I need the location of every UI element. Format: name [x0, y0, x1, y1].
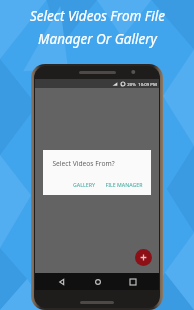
staticText: FILE MANAGER: [105, 181, 143, 188]
button[interactable]: GALLERY: [70, 179, 98, 190]
button[interactable]: Back: [53, 273, 70, 290]
staticText: Manager Or Gallery: [38, 30, 157, 48]
staticText: Select Videos From?: [52, 159, 115, 168]
staticText: GALLERY: [73, 181, 95, 188]
staticText: 20%: [127, 81, 136, 87]
staticText: 10:09 PM: [138, 81, 157, 87]
button[interactable]: Home: [89, 273, 106, 290]
button[interactable]: Add video: [135, 249, 152, 266]
staticText: Select Videos From File: [30, 7, 165, 25]
button[interactable]: Recents: [124, 273, 141, 290]
button[interactable]: FILE MANAGER: [102, 179, 146, 190]
